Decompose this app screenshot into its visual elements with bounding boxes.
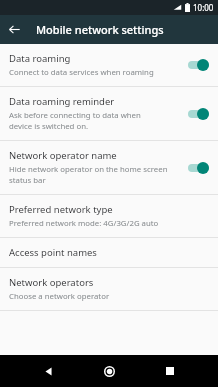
button[interactable]: Access point names — [0, 238, 218, 267]
staticText: Choose a network operator — [9, 291, 110, 302]
button[interactable]: Toggle — [187, 160, 211, 176]
button[interactable]: Data roaming — [0, 44, 218, 86]
staticText: Data roaming — [9, 52, 71, 65]
staticText: Preferred network mode: 4G/3G/2G auto — [9, 218, 159, 229]
staticText: Network operator name — [9, 149, 117, 162]
button[interactable]: Toggle — [187, 106, 211, 122]
staticText: Data roaming reminder — [9, 95, 115, 108]
staticText: 10:00 — [193, 2, 214, 13]
staticText: Mobile network settings — [36, 22, 164, 37]
button[interactable]: Network operators — [0, 268, 218, 310]
button[interactable]: Back — [0, 15, 29, 44]
staticText: Network operators — [9, 276, 94, 289]
button[interactable]: Data roaming reminder — [0, 87, 218, 140]
button[interactable]: Network operator name — [0, 141, 218, 194]
button[interactable]: Home — [96, 358, 122, 384]
staticText: Connect to data services when roaming — [9, 67, 154, 78]
button[interactable]: Preferred network type — [0, 195, 218, 237]
button[interactable]: Back — [35, 358, 61, 384]
button[interactable]: Toggle — [187, 57, 211, 73]
staticText: Ask before connecting to data when devic… — [9, 110, 141, 132]
button[interactable]: Recent apps — [157, 358, 183, 384]
staticText: Access point names — [9, 246, 97, 259]
staticText: Hide network operator on the home screen… — [9, 164, 168, 186]
staticText: Preferred network type — [9, 203, 113, 216]
